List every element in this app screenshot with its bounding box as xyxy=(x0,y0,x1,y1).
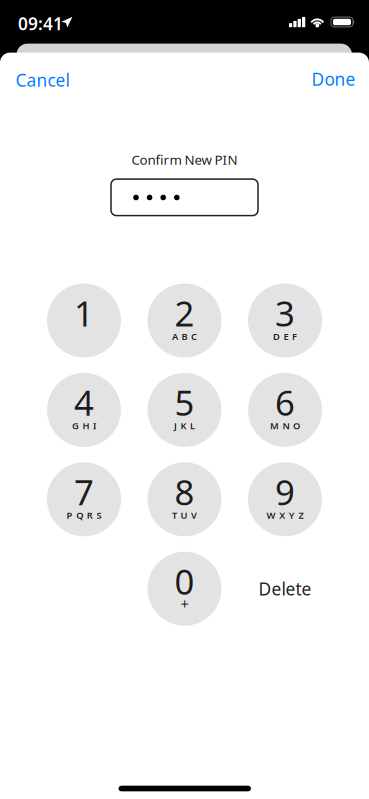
staticText: Z xyxy=(298,509,303,521)
button[interactable]: 3 xyxy=(248,283,322,357)
button[interactable]: 7 xyxy=(47,462,121,536)
staticText: Cancel xyxy=(16,69,70,92)
staticText: J xyxy=(174,419,177,432)
staticText: N xyxy=(282,419,289,432)
button[interactable]: Delete xyxy=(248,552,322,626)
staticText: I xyxy=(93,419,96,432)
staticText: 0 xyxy=(174,558,194,604)
button[interactable]: 6 xyxy=(248,373,322,447)
staticText: 9 xyxy=(275,469,295,515)
staticText: H xyxy=(82,419,89,432)
staticText: 5 xyxy=(174,379,194,425)
staticText: S xyxy=(96,509,101,521)
button[interactable]: 0 xyxy=(147,552,221,626)
staticText: D xyxy=(273,330,280,342)
staticText: Delete xyxy=(258,577,311,600)
button[interactable]: 1 xyxy=(47,283,121,357)
staticText: 1 xyxy=(74,290,94,336)
staticText: 8 xyxy=(174,469,194,515)
staticText: G xyxy=(72,419,79,432)
staticText: 7 xyxy=(74,469,94,515)
staticText: Done xyxy=(311,68,355,91)
button[interactable]: 5 xyxy=(147,373,221,447)
staticText: E xyxy=(283,330,288,342)
staticText: P xyxy=(67,509,73,521)
staticText: Confirm New PIN xyxy=(131,151,237,168)
button[interactable]: 9 xyxy=(248,462,322,536)
staticText: B xyxy=(181,330,187,342)
staticText: 2 xyxy=(174,290,194,336)
staticText: F xyxy=(292,330,297,342)
staticText: 09:41 xyxy=(18,12,63,35)
staticText: M xyxy=(270,419,279,432)
staticText: L xyxy=(190,419,195,432)
staticText: Y xyxy=(289,509,295,521)
button[interactable]: Cancel xyxy=(0,58,84,102)
button[interactable]: Done xyxy=(299,57,369,101)
staticText: A xyxy=(172,330,178,342)
staticText: R xyxy=(87,509,93,521)
staticText: 4 xyxy=(74,379,94,425)
button[interactable]: 2 xyxy=(147,283,221,357)
staticText: 6 xyxy=(275,379,295,425)
button[interactable]: 8 xyxy=(147,462,221,536)
staticText: K xyxy=(180,419,186,432)
staticText: Q xyxy=(76,509,83,521)
staticText: T xyxy=(172,509,177,521)
staticText: C xyxy=(191,330,197,342)
staticText: U xyxy=(180,509,187,521)
staticText: X xyxy=(279,509,285,521)
staticText: + xyxy=(180,594,188,613)
staticText: W xyxy=(267,509,276,521)
staticText: O xyxy=(293,419,300,432)
button[interactable]: 4 xyxy=(47,373,121,447)
staticText: 3 xyxy=(275,290,295,336)
staticText: V xyxy=(191,509,197,521)
